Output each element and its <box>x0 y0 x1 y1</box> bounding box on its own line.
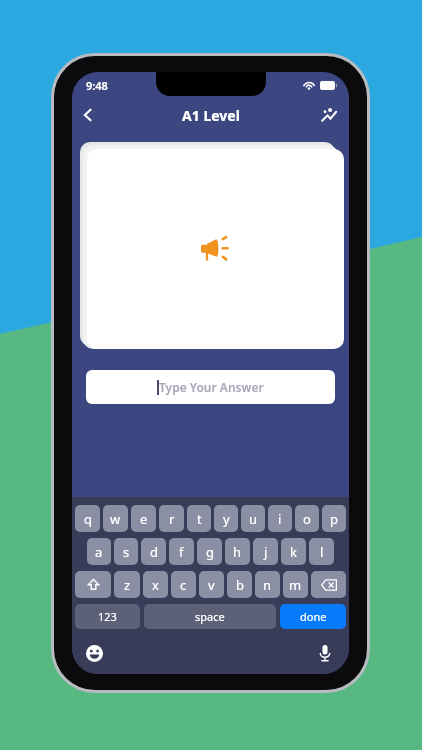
button[interactable]: Type Your Answer <box>86 370 335 404</box>
button[interactable]: t <box>187 505 211 532</box>
button[interactable]: Emoji <box>82 641 106 665</box>
button[interactable]: z <box>114 571 140 598</box>
staticText: A1 Level <box>182 106 240 125</box>
staticText: 9:48 <box>86 78 108 93</box>
button[interactable]: m <box>283 571 308 598</box>
button[interactable]: h <box>225 538 250 565</box>
button[interactable]: s <box>114 538 138 565</box>
staticText: m <box>289 576 302 594</box>
staticText: q <box>84 510 92 528</box>
staticText: 123 <box>98 609 117 624</box>
button[interactable]: Voice input <box>313 641 337 665</box>
staticText: e <box>140 510 148 528</box>
button[interactable]: a <box>87 538 111 565</box>
staticText: w <box>110 510 121 528</box>
button[interactable]: c <box>171 571 196 598</box>
staticText: space <box>195 609 225 624</box>
staticText: z <box>124 576 131 594</box>
button[interactable]: x <box>143 571 168 598</box>
button[interactable]: Key <box>75 571 111 598</box>
button[interactable]: r <box>159 505 184 532</box>
staticText: t <box>197 510 202 528</box>
button[interactable]: i <box>268 505 292 532</box>
button[interactable]: f <box>169 538 194 565</box>
button[interactable]: n <box>255 571 280 598</box>
button[interactable]: k <box>281 538 306 565</box>
staticText: j <box>264 543 268 561</box>
button[interactable]: space <box>144 604 276 629</box>
staticText: done <box>300 609 327 624</box>
staticText: f <box>179 543 184 561</box>
button[interactable]: done <box>280 604 346 629</box>
staticText: c <box>180 576 187 594</box>
button[interactable]: q <box>75 505 100 532</box>
staticText: b <box>236 576 244 594</box>
button[interactable]: j <box>253 538 278 565</box>
staticText: y <box>223 510 230 528</box>
staticText: a <box>95 543 103 561</box>
button[interactable]: y <box>214 505 238 532</box>
button[interactable]: u <box>241 505 265 532</box>
button[interactable]: Key <box>311 571 346 598</box>
staticText: o <box>303 510 311 528</box>
button[interactable]: Statistics <box>313 99 345 131</box>
staticText: x <box>152 576 159 594</box>
staticText: g <box>206 543 214 561</box>
button[interactable]: o <box>295 505 319 532</box>
button[interactable]: w <box>103 505 128 532</box>
button[interactable]: p <box>322 505 346 532</box>
staticText: d <box>150 543 158 561</box>
staticText: k <box>290 543 297 561</box>
button[interactable]: 123 <box>75 604 140 629</box>
staticText: h <box>233 543 242 561</box>
button[interactable]: v <box>199 571 224 598</box>
staticText: p <box>330 510 338 528</box>
staticText: n <box>263 576 272 594</box>
staticText: r <box>169 510 175 528</box>
button[interactable]: Back <box>72 99 104 131</box>
staticText: v <box>208 576 215 594</box>
staticText: i <box>278 510 282 528</box>
button[interactable]: b <box>227 571 252 598</box>
staticText: Type Your Answer <box>159 379 264 395</box>
staticText: l <box>320 543 324 561</box>
button[interactable]: l <box>309 538 334 565</box>
button[interactable]: d <box>141 538 166 565</box>
staticText: u <box>249 510 258 528</box>
button[interactable]: e <box>131 505 156 532</box>
button[interactable] <box>87 149 344 349</box>
button[interactable]: g <box>197 538 222 565</box>
staticText: s <box>123 543 130 561</box>
